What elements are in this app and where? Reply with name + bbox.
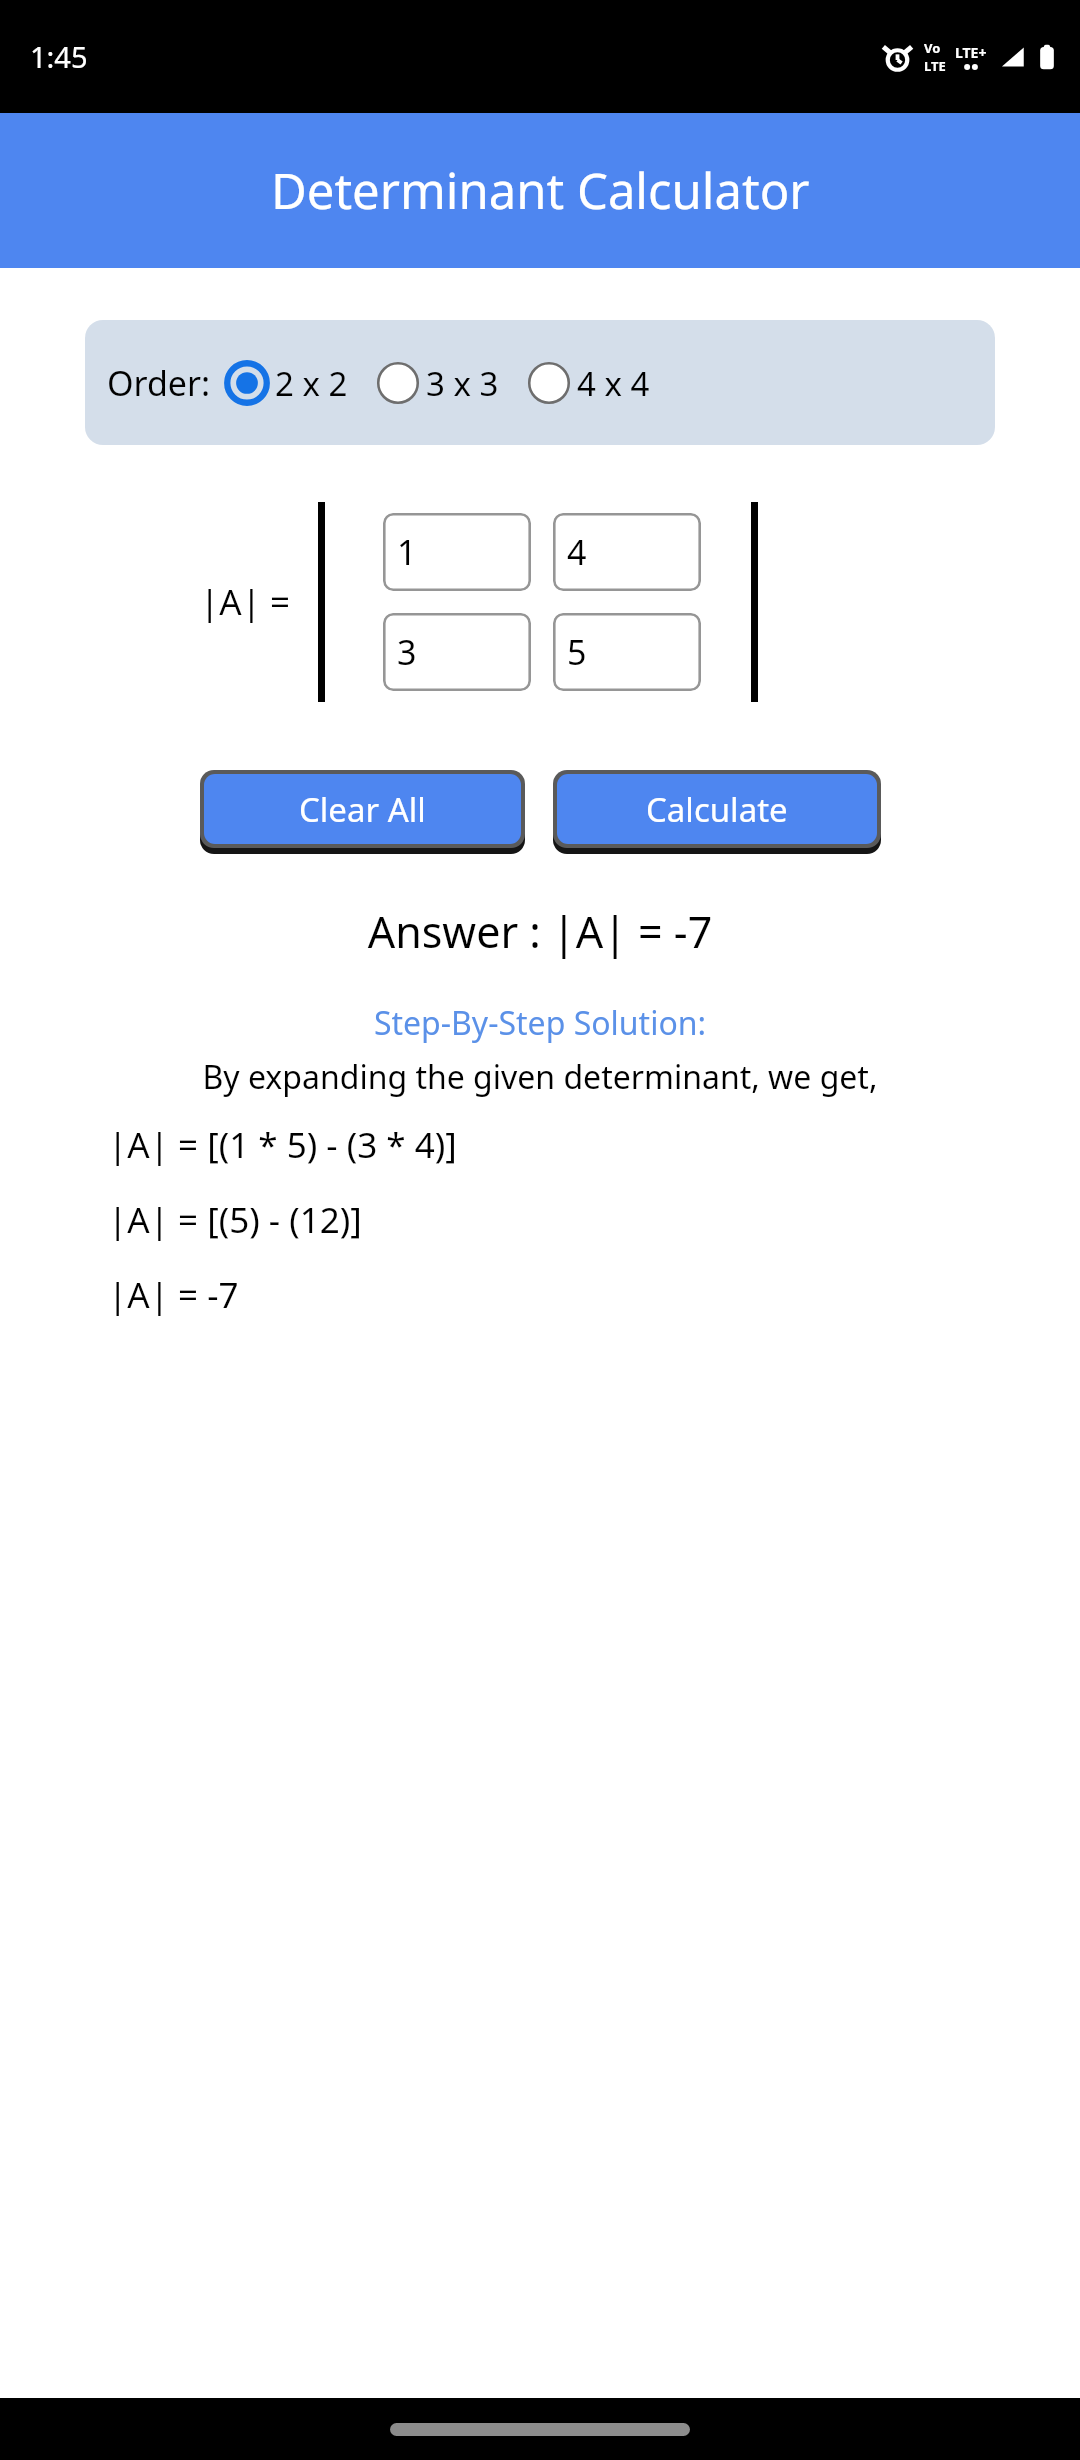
staticText: Clear All (299, 787, 426, 832)
staticText: |A| = -7 (108, 1271, 1080, 1319)
staticText: |A| = (200, 578, 291, 626)
staticText: 5 (567, 629, 587, 675)
staticText: 4 x 4 (577, 361, 650, 406)
button[interactable]: Matrix entry 5 (553, 613, 701, 691)
button[interactable]: 3 x 3 (372, 357, 499, 409)
staticText: LTE (924, 57, 946, 75)
other: Signal (998, 43, 1026, 71)
staticText: |A| = [(5) - (12)] (108, 1196, 1080, 1244)
button[interactable]: 4 x 4 (523, 357, 650, 409)
staticText: Vo (924, 39, 941, 57)
button[interactable]: Matrix entry 4 (553, 513, 701, 591)
staticText: 1 (397, 529, 417, 575)
staticText: By expanding the given determinant, we g… (0, 1055, 1080, 1099)
staticText: 3 (397, 629, 417, 675)
staticText: 3 x 3 (426, 361, 499, 406)
staticText: Step-By-Step Solution: (0, 1001, 1080, 1045)
staticText: Calculate (646, 787, 788, 832)
button[interactable]: Matrix entry 3 (383, 613, 531, 691)
staticText: |A| = [(1 * 5) - (3 * 4)] (108, 1121, 1080, 1169)
button[interactable]: Determinant Calculator (0, 113, 1080, 268)
other: Battery (1038, 43, 1056, 71)
button[interactable]: 2 x 2 (221, 357, 348, 409)
staticText: 1:45 (30, 37, 88, 76)
staticText: Order: (107, 360, 211, 406)
button[interactable]: Clear All (204, 774, 521, 844)
staticText: 2 x 2 (275, 361, 348, 406)
other: Alarm set (882, 42, 913, 73)
staticText: Answer : |A| = -7 (0, 902, 1080, 961)
staticText: LTE+ (955, 43, 987, 62)
button[interactable]: Calculate (557, 774, 877, 844)
staticText: 4 (567, 529, 587, 575)
staticText: Determinant Calculator (271, 157, 810, 224)
button[interactable]: Matrix entry 1 (383, 513, 531, 591)
